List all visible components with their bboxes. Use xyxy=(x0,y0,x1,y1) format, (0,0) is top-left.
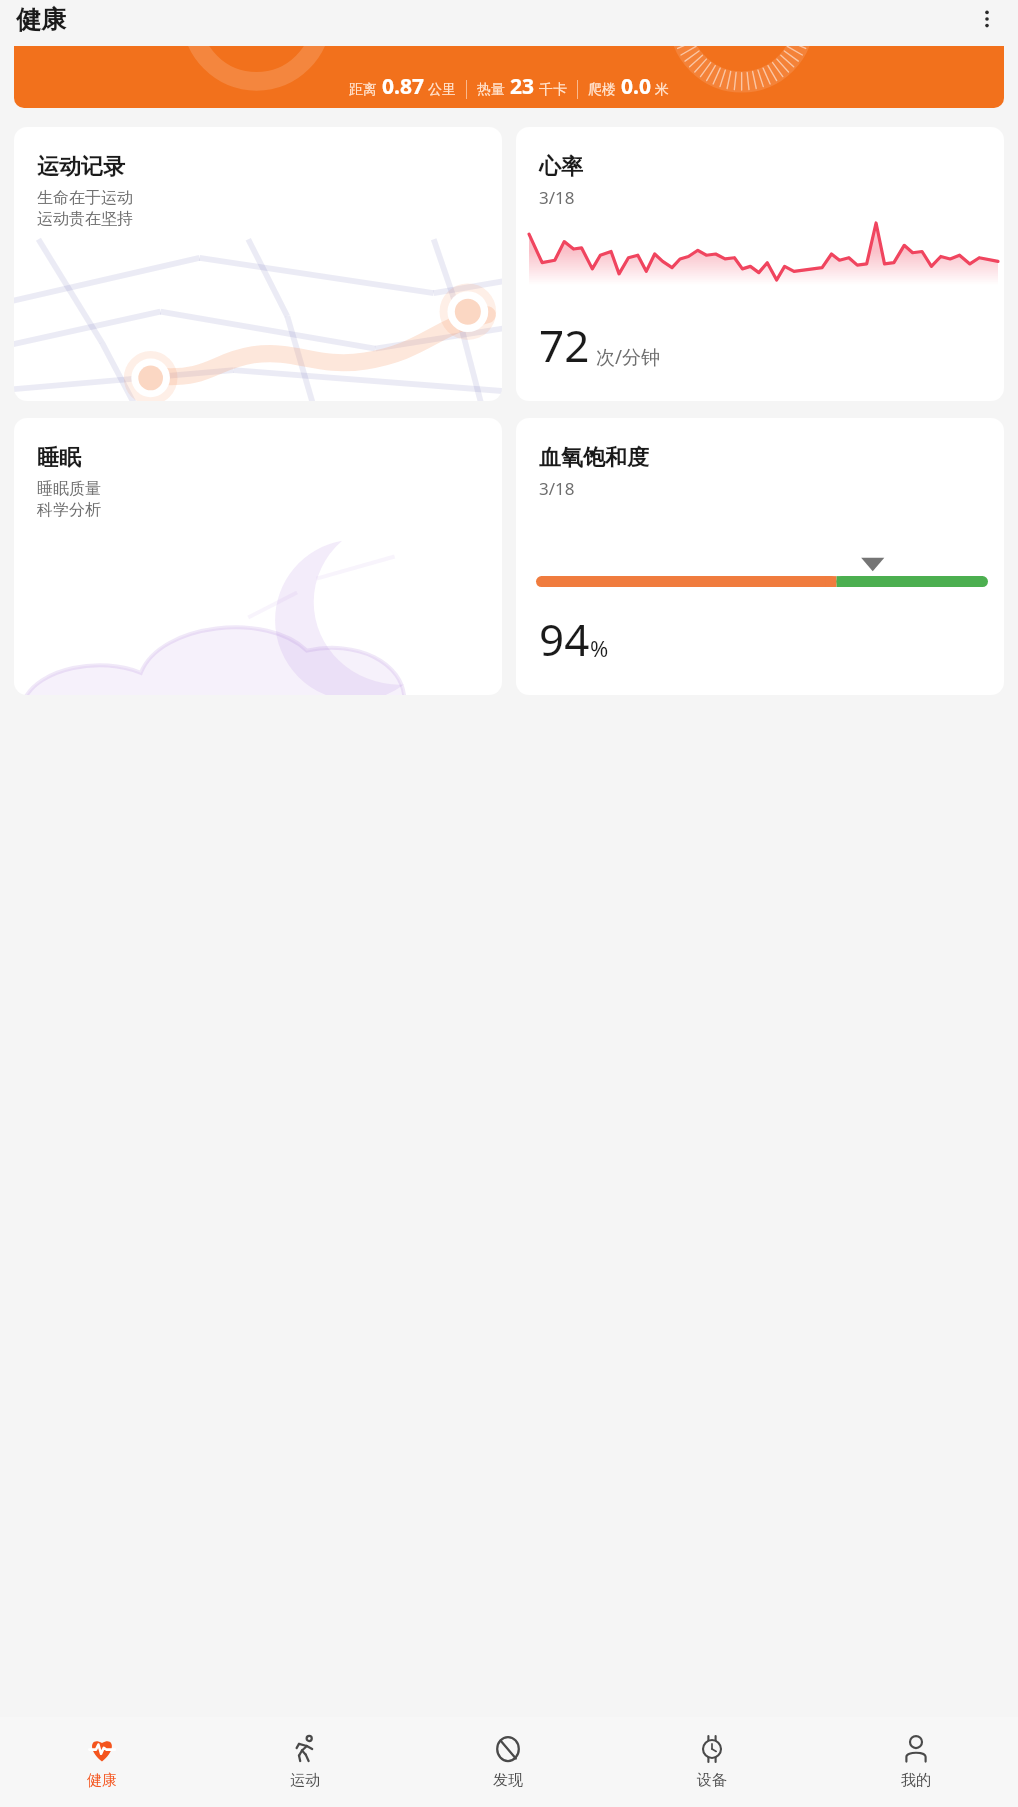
staticText: 爬楼 xyxy=(588,81,616,99)
staticText: 千卡 xyxy=(539,81,567,99)
staticText: 运动记录 xyxy=(37,153,125,181)
button[interactable]: 距离 xyxy=(14,46,1004,108)
staticText: 3/18 xyxy=(539,186,575,209)
staticText: 生命在于运动 xyxy=(37,188,133,208)
staticText: 23 xyxy=(510,72,535,101)
button[interactable]: 血氧饱和度 xyxy=(516,418,1004,695)
staticText: 运动贵在坚持 xyxy=(37,209,133,229)
staticText: 0.0 xyxy=(621,72,651,101)
staticText: 94 xyxy=(539,609,590,669)
staticText: 3/18 xyxy=(539,477,575,500)
staticText: 健康 xyxy=(16,4,66,35)
staticText: 我的 xyxy=(901,1771,931,1790)
staticText: 健康 xyxy=(87,1771,117,1790)
staticText: 睡眠 xyxy=(37,444,81,472)
staticText: 科学分析 xyxy=(37,500,101,520)
button[interactable]: 发现 xyxy=(406,1717,610,1807)
button[interactable]: 心率 xyxy=(516,127,1004,401)
staticText: 设备 xyxy=(697,1771,727,1790)
staticText: 距离 xyxy=(349,81,377,99)
button[interactable]: 健康 xyxy=(0,1717,203,1807)
staticText: 次/分钟 xyxy=(596,344,661,370)
staticText: 睡眠质量 xyxy=(37,479,101,499)
button[interactable]: 睡眠 xyxy=(14,418,502,695)
staticText: 公里 xyxy=(428,81,456,99)
staticText: % xyxy=(590,633,609,663)
staticText: 热量 xyxy=(477,81,505,99)
button[interactable]: 我的 xyxy=(814,1717,1018,1807)
staticText: 心率 xyxy=(539,153,583,181)
button[interactable]: 运动记录 xyxy=(14,127,502,401)
staticText: 米 xyxy=(655,81,669,99)
staticText: 0.87 xyxy=(382,72,424,101)
staticText: 发现 xyxy=(493,1771,523,1790)
button[interactable]: 设备 xyxy=(610,1717,814,1807)
staticText: 运动 xyxy=(290,1771,320,1790)
button[interactable]: More options xyxy=(970,2,1004,36)
button[interactable]: 运动 xyxy=(203,1717,406,1807)
staticText: 72 xyxy=(539,315,590,375)
staticText: 血氧饱和度 xyxy=(539,444,649,472)
